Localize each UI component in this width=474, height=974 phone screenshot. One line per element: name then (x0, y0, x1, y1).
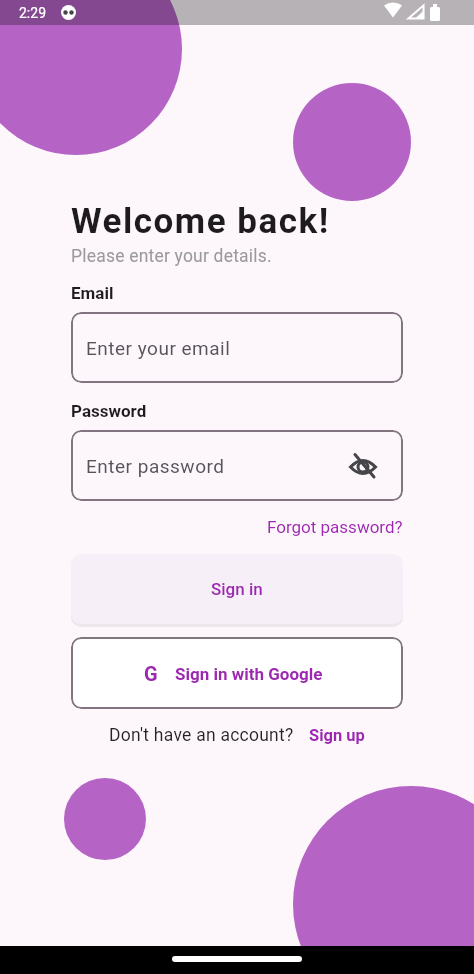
button[interactable]: Enter password (71, 430, 403, 501)
staticText: Please enter your details. (71, 246, 272, 267)
staticText: Enter password (86, 455, 225, 477)
staticText: Sign up (309, 726, 365, 745)
staticText: Email (71, 283, 114, 303)
staticText: G (144, 662, 158, 685)
staticText: Password (71, 401, 147, 421)
staticText: Enter your email (86, 337, 231, 359)
button[interactable]: G (71, 637, 403, 709)
button[interactable]: Forgot password? (267, 517, 403, 537)
button[interactable]: Sign up (309, 726, 365, 745)
staticText: Welcome back! (71, 201, 330, 242)
button[interactable] (350, 453, 376, 479)
staticText: 2:29 (19, 5, 46, 21)
staticText: Sign in with Google (175, 664, 323, 684)
button[interactable]: Enter your email (71, 312, 403, 383)
staticText: Don't have an account? (109, 725, 294, 746)
staticText: Sign in (211, 579, 263, 599)
staticText: Forgot password? (267, 517, 403, 537)
button[interactable]: Sign in (71, 554, 403, 624)
